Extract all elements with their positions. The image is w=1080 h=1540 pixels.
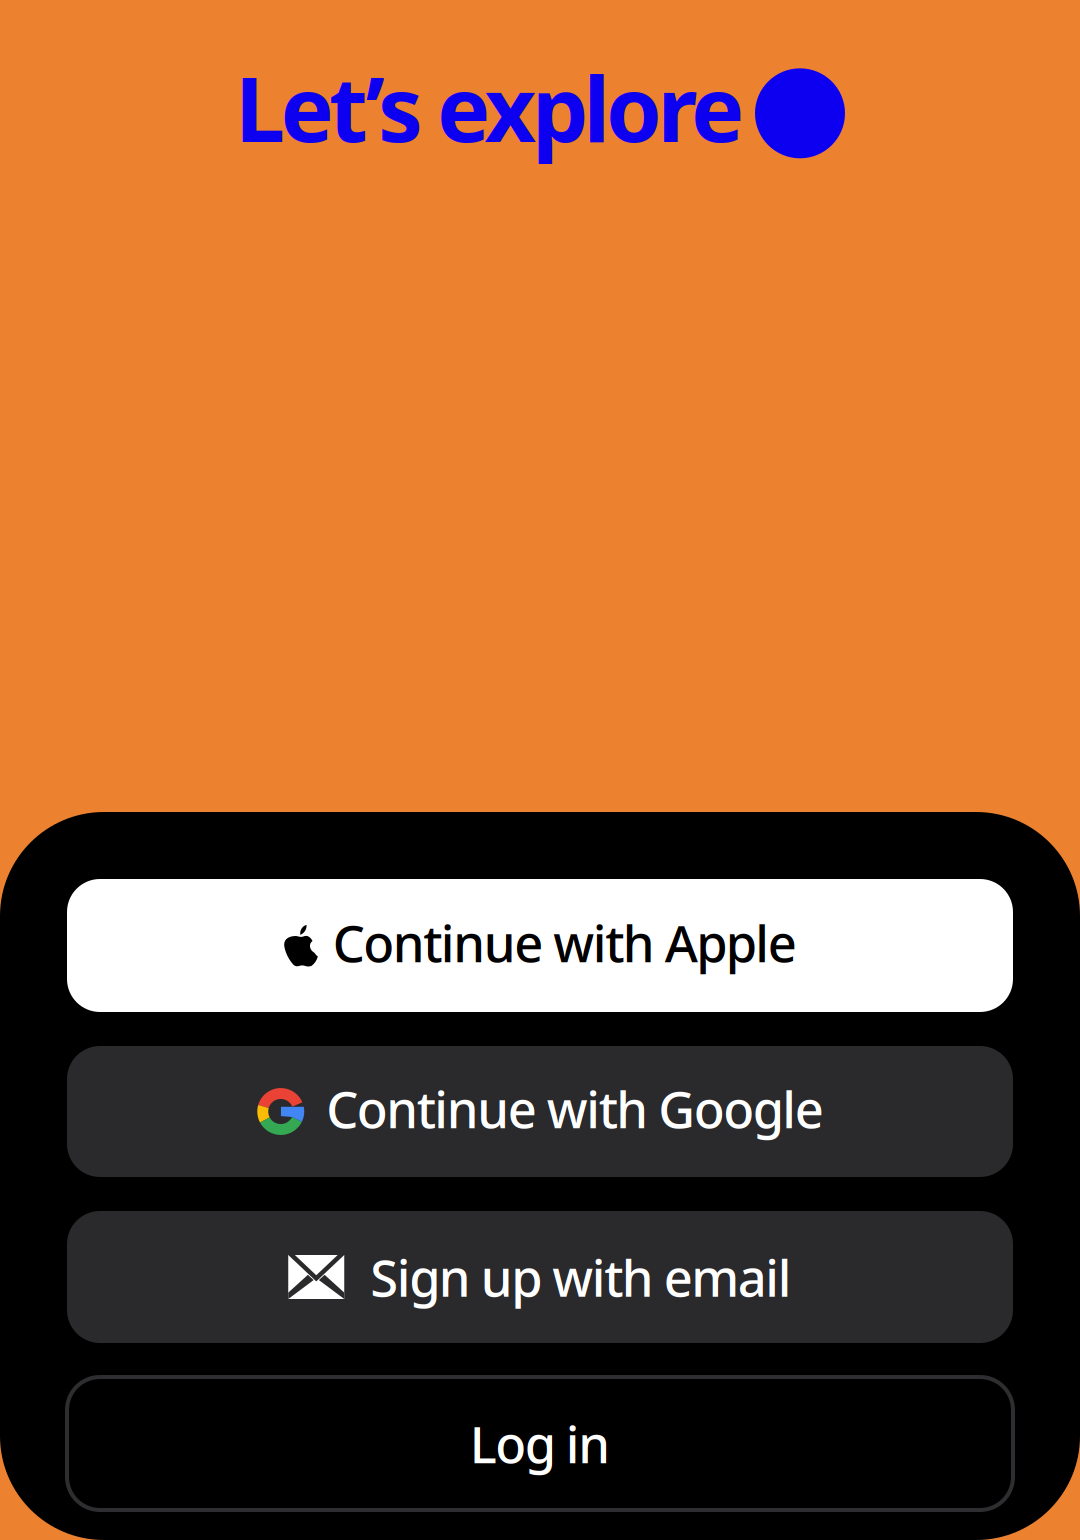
staticText: Let’s explore <box>235 48 744 167</box>
button[interactable]: Continue with Apple <box>67 879 1013 1012</box>
staticText: Log in <box>470 1410 610 1477</box>
staticText: Sign up with email <box>370 1243 792 1311</box>
button[interactable]: Log in <box>67 1377 1013 1510</box>
button[interactable]: Continue with Google <box>67 1046 1013 1177</box>
staticText: Continue with Google <box>326 1075 824 1142</box>
button[interactable]: Sign up with email <box>67 1211 1013 1343</box>
staticText: Continue with Apple <box>333 909 797 976</box>
